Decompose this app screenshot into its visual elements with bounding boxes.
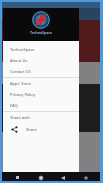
staticText: Apps' Store [10,81,32,86]
button[interactable]: TechnoSpace [3,44,79,55]
button[interactable]: Privacy Policy [3,89,79,100]
staticText: TechnoSpace [30,30,52,35]
staticText: TechnoSpace [10,47,35,52]
button[interactable]: Recents [13,173,22,182]
button[interactable]: FAQ [3,100,79,111]
button[interactable]: About Us [3,55,79,66]
button[interactable]: Back [58,173,67,182]
staticText: Contact US [10,69,31,74]
button[interactable]: TechnoSpace [3,8,79,41]
staticText: FAQ [10,103,18,108]
staticText: Privacy Policy [10,92,36,97]
other: Share [10,125,18,133]
staticText: Share with [10,115,30,120]
button[interactable]: Share with [3,112,79,123]
button[interactable]: Apps' Store [3,78,79,89]
staticText: About Us [10,58,28,63]
button[interactable]: Home [36,173,45,182]
button[interactable]: Contact US [3,66,79,77]
staticText: Share [26,127,37,132]
button[interactable]: Share [3,123,79,135]
button[interactable]: Menu [81,173,90,182]
